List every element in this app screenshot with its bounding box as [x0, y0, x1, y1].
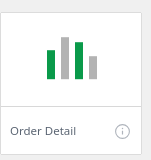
button[interactable]: Order Detail — [0, 107, 142, 155]
staticText: Order Detail — [10, 123, 77, 139]
button[interactable]: Info — [111, 120, 133, 142]
